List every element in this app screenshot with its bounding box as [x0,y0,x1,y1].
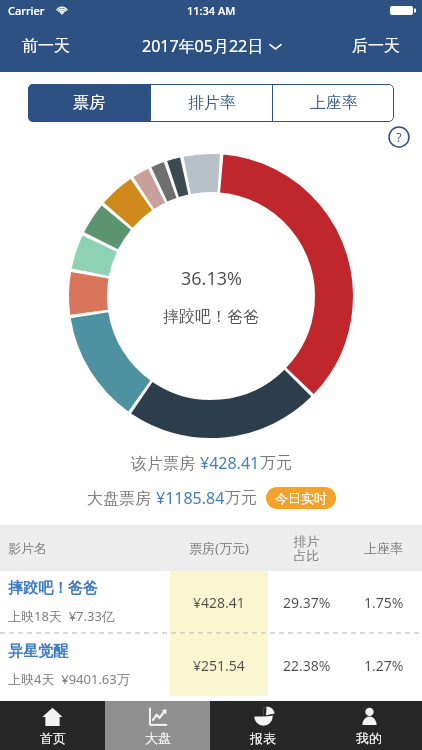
staticText: 36.13% [181,266,242,291]
button[interactable]: 2017年05月22日 [136,29,287,63]
staticText: 票房(万元) [170,539,268,557]
staticText: 摔跤吧！爸爸 [163,307,259,327]
button[interactable]: 首页 [0,701,105,750]
staticText: ? [396,128,402,146]
staticText: 首页 [40,730,66,746]
button[interactable]: 帮助 [388,126,410,148]
staticText: ¥1185.84 [156,487,225,509]
staticText: 上映4天 ¥9401.63万 [8,670,130,688]
staticText: 大盘 [145,730,171,746]
button[interactable]: 摔跤吧！爸爸 [0,571,422,633]
staticText: 29.37% [283,593,331,612]
staticText: 1.27% [364,656,404,675]
button[interactable]: 后一天 [330,26,422,66]
staticText: 票房 [73,93,105,113]
staticText: 2017年05月22日 [142,35,264,57]
staticText: 万元 [260,453,292,473]
staticText: Carrier [8,3,45,18]
staticText: 影片名 [8,540,170,556]
staticText: 前一天 [22,36,70,56]
staticText: 上座率 [310,93,358,113]
staticText: 异星觉醒 [8,642,68,661]
staticText: ¥428.41 [200,452,260,474]
staticText: 22.38% [283,656,331,675]
staticText: 排片率 [188,93,236,113]
button[interactable]: 上座率 [273,84,394,122]
button[interactable]: 我的 [316,701,422,750]
staticText: 报表 [250,730,276,746]
staticText: ¥251.54 [193,656,245,675]
staticText: 上映18天 ¥7.33亿 [8,607,115,625]
staticText: 今日实时 [275,490,327,506]
staticText: 该片票房 [131,452,200,474]
staticText: 后一天 [352,36,400,56]
staticText: ¥428.41 [193,593,245,612]
button[interactable]: 大盘 [105,701,210,750]
staticText: 上座率 [345,540,422,556]
button[interactable]: 异星觉醒 [0,634,422,696]
button[interactable]: 前一天 [0,26,92,66]
button[interactable]: 报表 [210,701,316,750]
staticText: 我的 [356,730,382,746]
button[interactable]: 排片率 [151,84,272,122]
button[interactable]: 今日实时 [266,487,336,509]
staticText: 排片 占比 [268,533,345,564]
staticText: 大盘票房 [87,487,156,509]
staticText: 11:34 AM [187,3,236,18]
button[interactable]: 票房 [28,84,150,122]
staticText: 摔跤吧！爸爸 [8,579,98,598]
staticText: 1.75% [364,593,404,612]
staticText: 万元 [225,488,257,508]
